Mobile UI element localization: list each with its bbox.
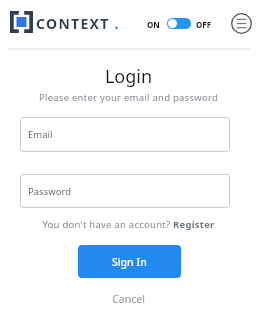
staticText: ON [147, 19, 160, 30]
staticText: Login [0, 64, 257, 89]
button[interactable] [231, 13, 252, 34]
staticText: Sign In [112, 255, 147, 269]
staticText: Email [28, 128, 53, 141]
staticText: Please enter your email and password [0, 91, 257, 104]
staticText: Password [28, 185, 71, 198]
button[interactable]: Cancel [0, 292, 257, 306]
button[interactable]: You don't have an account? Register [0, 218, 257, 231]
staticText: OFF [196, 19, 212, 30]
staticText: CONTEXT . [36, 14, 120, 33]
button[interactable]: Sign In [78, 245, 181, 278]
button[interactable] [167, 18, 191, 29]
button[interactable]: Password [20, 174, 230, 208]
button[interactable]: Email [20, 117, 230, 152]
